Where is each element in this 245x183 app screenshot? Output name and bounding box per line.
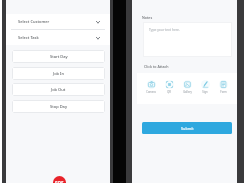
staticText: Sign [202,90,208,94]
button[interactable]: Job In [12,67,105,80]
button[interactable]: Gallery [178,73,196,94]
button[interactable]: Stop Day [12,100,105,113]
staticText: Select Task [18,35,39,40]
staticText: Job Out [51,87,66,92]
staticText: Form [220,90,227,94]
button[interactable]: Sign [196,73,214,94]
button[interactable]: Start Day [12,50,105,63]
staticText: Notes [142,15,153,20]
staticText: Gallery [183,90,192,94]
staticText: QR [167,90,171,94]
button[interactable]: Type your text here. [143,22,232,57]
button[interactable]: Select Task [6,30,110,45]
button[interactable]: Camera [142,73,160,94]
staticText: Select Customer [18,19,50,24]
button[interactable]: Form [214,73,232,94]
staticText: Start Day [50,54,68,59]
button[interactable]: Submit [142,122,232,134]
button[interactable]: Select Customer [6,14,110,29]
staticText: Submit [181,126,194,131]
button[interactable]: Job Out [12,83,105,96]
staticText: Job In [53,71,65,76]
staticText: Camera [146,90,156,94]
staticText: Type your text here. [149,27,180,31]
staticText: Stop Day [50,104,68,109]
button[interactable]: SOS emergency [53,176,66,183]
staticText: SOS [55,180,64,183]
staticText: Click to Attach [144,64,169,69]
button[interactable]: QR [160,73,178,94]
